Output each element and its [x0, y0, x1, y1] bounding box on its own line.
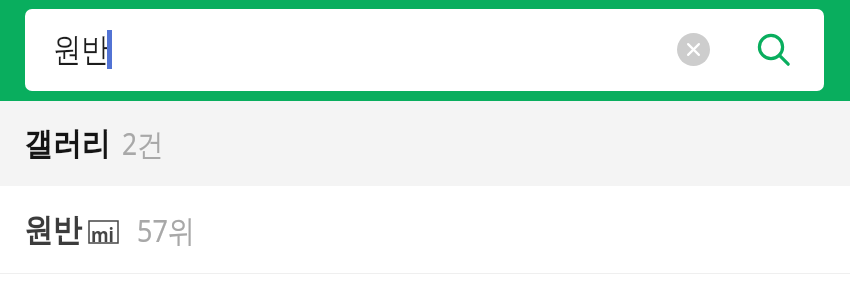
button[interactable]: Clear search query	[661, 17, 726, 82]
staticText: 원반	[24, 210, 82, 250]
button[interactable]: 갤러리	[0, 101, 850, 186]
button[interactable]: 원반	[25, 9, 824, 91]
button[interactable]: Search	[743, 19, 808, 84]
staticText: 원반	[53, 29, 109, 71]
staticText: 갤러리	[24, 124, 110, 164]
staticText: mi	[91, 222, 115, 244]
button[interactable]: 원반	[0, 186, 850, 273]
staticText: 2건	[122, 123, 164, 164]
staticText: 57위	[137, 209, 195, 251]
